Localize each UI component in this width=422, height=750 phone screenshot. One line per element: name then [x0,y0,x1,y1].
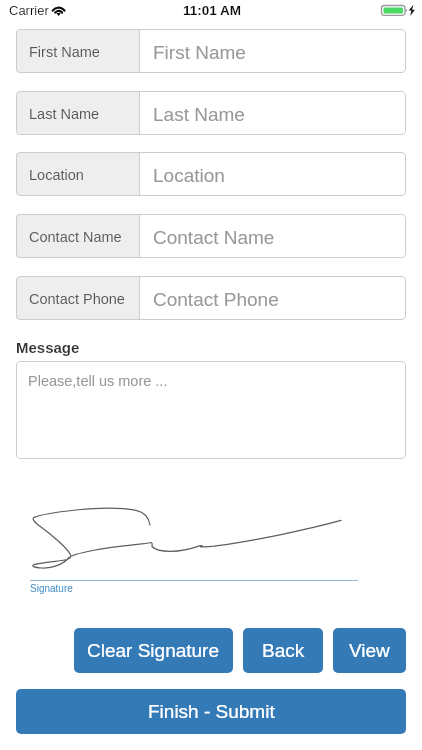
staticText: Contact Phone [29,291,125,307]
staticText: Please,tell us more ... [28,373,168,389]
staticText: Location [29,167,84,183]
staticText: View [349,640,390,661]
other: Wi-Fi [50,2,67,15]
button[interactable]: First Name [16,29,406,73]
button[interactable]: Contact Name [16,214,406,258]
staticText: Contact Phone [153,289,279,310]
staticText: Contact Name [29,229,122,245]
staticText: Contact Name [153,227,275,248]
button[interactable]: Last Name [16,91,406,135]
button[interactable]: Back [243,628,323,673]
button[interactable]: Please,tell us more ... [16,361,406,459]
staticText: Carrier [9,3,49,18]
staticText: Message [16,339,80,356]
staticText: First Name [29,44,100,60]
button[interactable]: Finish - Submit [16,689,406,734]
staticText: First Name [153,42,246,63]
staticText: Last Name [153,104,245,125]
staticText: Back [262,640,305,661]
button[interactable]: Location [16,152,406,196]
staticText: Last Name [29,106,100,122]
staticText: Clear Signature [87,640,220,661]
staticText: Signature [30,583,73,594]
button[interactable]: Clear Signature [74,628,233,673]
staticText: Finish - Submit [148,701,275,722]
other: Battery charging [380,4,417,17]
button[interactable]: Contact Phone [16,276,406,320]
staticText: 11:01 AM [183,3,242,18]
button[interactable]: View [333,628,406,673]
staticText: Location [153,165,225,186]
